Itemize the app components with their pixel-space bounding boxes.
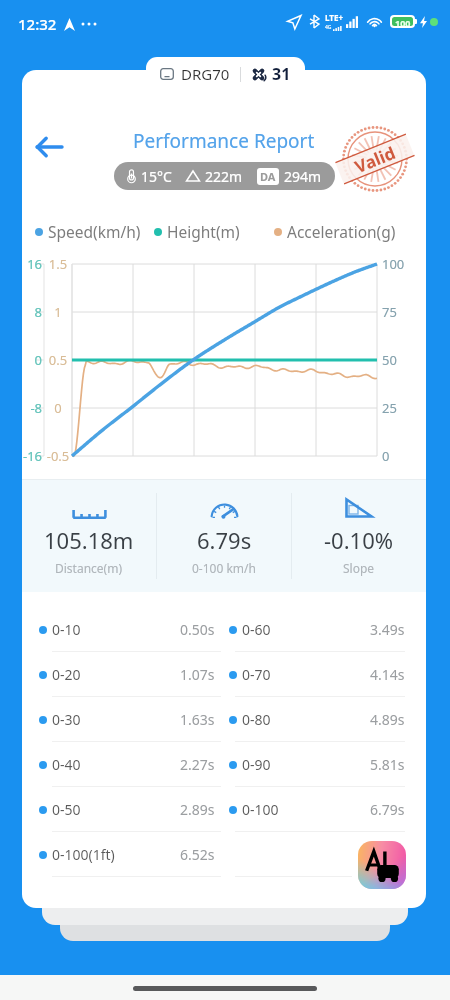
staticText: 1.5 [46, 255, 70, 273]
staticText: 0-60 [242, 620, 271, 639]
button[interactable]: 0-50 [39, 800, 215, 819]
button[interactable]: 0-70 [229, 665, 405, 684]
staticText: Performance Report [133, 128, 315, 154]
button[interactable]: DRG70 [146, 57, 305, 91]
staticText: 0.50s [180, 620, 215, 639]
staticText: 2.89s [180, 800, 215, 819]
staticText: 2.27s [180, 755, 215, 774]
staticText: -16 [22, 447, 42, 465]
staticText: 4.89s [370, 710, 405, 729]
staticText: 0 [22, 351, 42, 369]
staticText: 0-30 [52, 710, 81, 729]
staticText: 6.79s [197, 525, 252, 555]
staticText: Speed(km/h) [48, 221, 141, 242]
staticText: 0-100(1ft) [52, 845, 115, 864]
staticText: 25 [382, 399, 397, 417]
staticText: 0 [46, 399, 70, 417]
staticText: DRG70 [181, 64, 230, 84]
staticText: Height(m) [167, 221, 240, 242]
staticText: 0-20 [52, 665, 81, 684]
staticText: 0 [382, 447, 390, 465]
button[interactable]: 0-60 [229, 620, 405, 639]
staticText: 5.81s [370, 755, 405, 774]
staticText: 0-100 km/h [192, 560, 256, 576]
button[interactable]: 6.79s [157, 497, 291, 576]
staticText: 1.63s [180, 710, 215, 729]
staticText: -0.10% [324, 525, 394, 555]
staticText: Valid [351, 141, 399, 178]
staticText: Acceleration(g) [287, 221, 396, 242]
button[interactable]: 0-80 [229, 710, 405, 729]
staticText: 0-100 [242, 800, 279, 819]
staticText: 6.52s [180, 845, 215, 864]
staticText: -8 [22, 399, 42, 417]
staticText: 1 [46, 303, 70, 321]
staticText: Slope [343, 560, 375, 576]
button[interactable]: 0-100 [229, 800, 405, 819]
staticText: 0-90 [242, 755, 271, 774]
staticText: 0-50 [52, 800, 81, 819]
staticText: 3.49s [370, 620, 405, 639]
staticText: 222m [205, 167, 243, 186]
staticText: 15°C [141, 167, 172, 186]
button[interactable]: 0-100(1ft) [39, 845, 215, 864]
staticText: -0.5 [46, 447, 70, 465]
staticText: 0-10 [52, 620, 81, 639]
staticText: 0.5 [46, 351, 70, 369]
button[interactable]: 0-20 [39, 665, 215, 684]
staticText: LTE+ [325, 12, 343, 23]
button[interactable]: AI assistant [352, 835, 412, 895]
staticText: 105.18m [44, 525, 134, 555]
staticText: 100 [382, 255, 405, 273]
staticText: 4.14s [370, 665, 405, 684]
staticText: 6.79s [370, 800, 405, 819]
staticText: 0-80 [242, 710, 271, 729]
button[interactable]: 0-10 [39, 620, 215, 639]
staticText: 4G [325, 24, 332, 31]
staticText: 75 [382, 303, 397, 321]
staticText: 8 [22, 303, 42, 321]
staticText: 16 [22, 255, 42, 273]
staticText: DA [260, 169, 276, 184]
staticText: 1.07s [180, 665, 215, 684]
staticText: 100 [395, 17, 411, 26]
button[interactable]: 0-30 [39, 710, 215, 729]
button[interactable]: -0.10% [292, 497, 426, 576]
staticText: Distance(m) [55, 560, 123, 576]
button[interactable]: 105.18m [22, 497, 156, 576]
staticText: 50 [382, 351, 397, 369]
staticText: 31 [272, 63, 291, 85]
staticText: 0-40 [52, 755, 81, 774]
button[interactable]: Back [24, 122, 74, 172]
button[interactable]: 0-90 [229, 755, 405, 774]
staticText: 12:32 [18, 14, 57, 34]
staticText: 0-70 [242, 665, 271, 684]
button[interactable]: 15°C [114, 162, 335, 190]
button[interactable]: 0-40 [39, 755, 215, 774]
staticText: 294m [284, 167, 322, 186]
